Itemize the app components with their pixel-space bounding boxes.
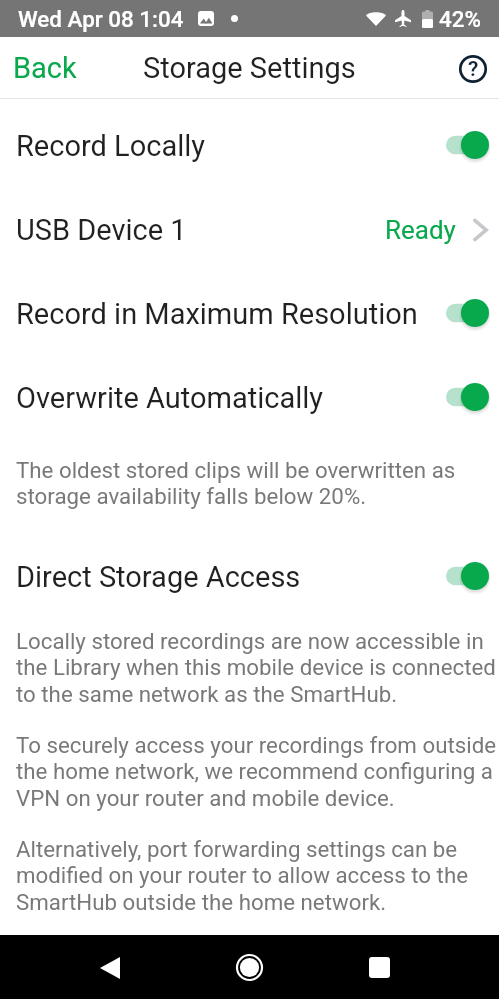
staticText: To securely access your recordings from …: [16, 732, 499, 812]
button[interactable]: Help: [447, 44, 499, 92]
staticText: Alternatively, port forwarding settings …: [16, 836, 499, 916]
staticText: Ready: [385, 215, 456, 245]
button[interactable]: Back: [85, 943, 134, 992]
staticText: Locally stored recordings are now access…: [16, 628, 499, 708]
staticText: 42%: [439, 6, 481, 32]
button[interactable]: USB Device 1: [0, 188, 499, 272]
button[interactable]: Home: [225, 943, 274, 992]
staticText: USB Device 1: [16, 213, 187, 247]
staticText: Back: [13, 51, 77, 85]
staticText: Direct Storage Access: [16, 560, 301, 594]
staticText: Record Locally: [16, 129, 206, 163]
button[interactable]: Record in Maximum Resolution: [0, 272, 499, 356]
staticText: Storage Settings: [143, 51, 356, 85]
button[interactable]: Recent apps: [355, 943, 404, 992]
staticText: The oldest stored clips will be overwrit…: [16, 457, 499, 510]
button[interactable]: Back: [0, 39, 90, 97]
staticText: Overwrite Automatically: [16, 381, 324, 415]
staticText: Wed Apr 08 1:04: [18, 6, 184, 32]
staticText: ?: [468, 57, 479, 82]
button[interactable]: Record Locally: [0, 104, 499, 188]
button[interactable]: Overwrite Automatically: [0, 356, 499, 440]
staticText: Record in Maximum Resolution: [16, 297, 418, 331]
button[interactable]: Direct Storage Access: [0, 535, 499, 619]
